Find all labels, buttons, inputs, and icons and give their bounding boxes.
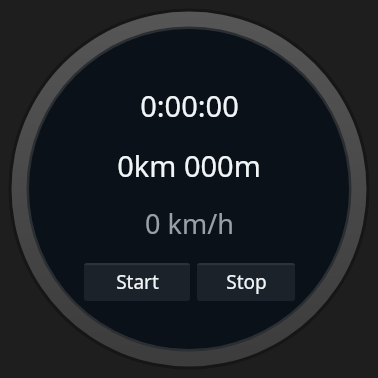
- staticText: 0:00:00: [140, 86, 239, 125]
- staticText: 0km 000m: [117, 146, 261, 185]
- button[interactable]: Start: [84, 263, 190, 301]
- staticText: Stop: [226, 269, 267, 295]
- staticText: Start: [116, 269, 159, 295]
- staticText: 0 km/h: [145, 205, 234, 242]
- button[interactable]: Stop: [197, 263, 295, 301]
